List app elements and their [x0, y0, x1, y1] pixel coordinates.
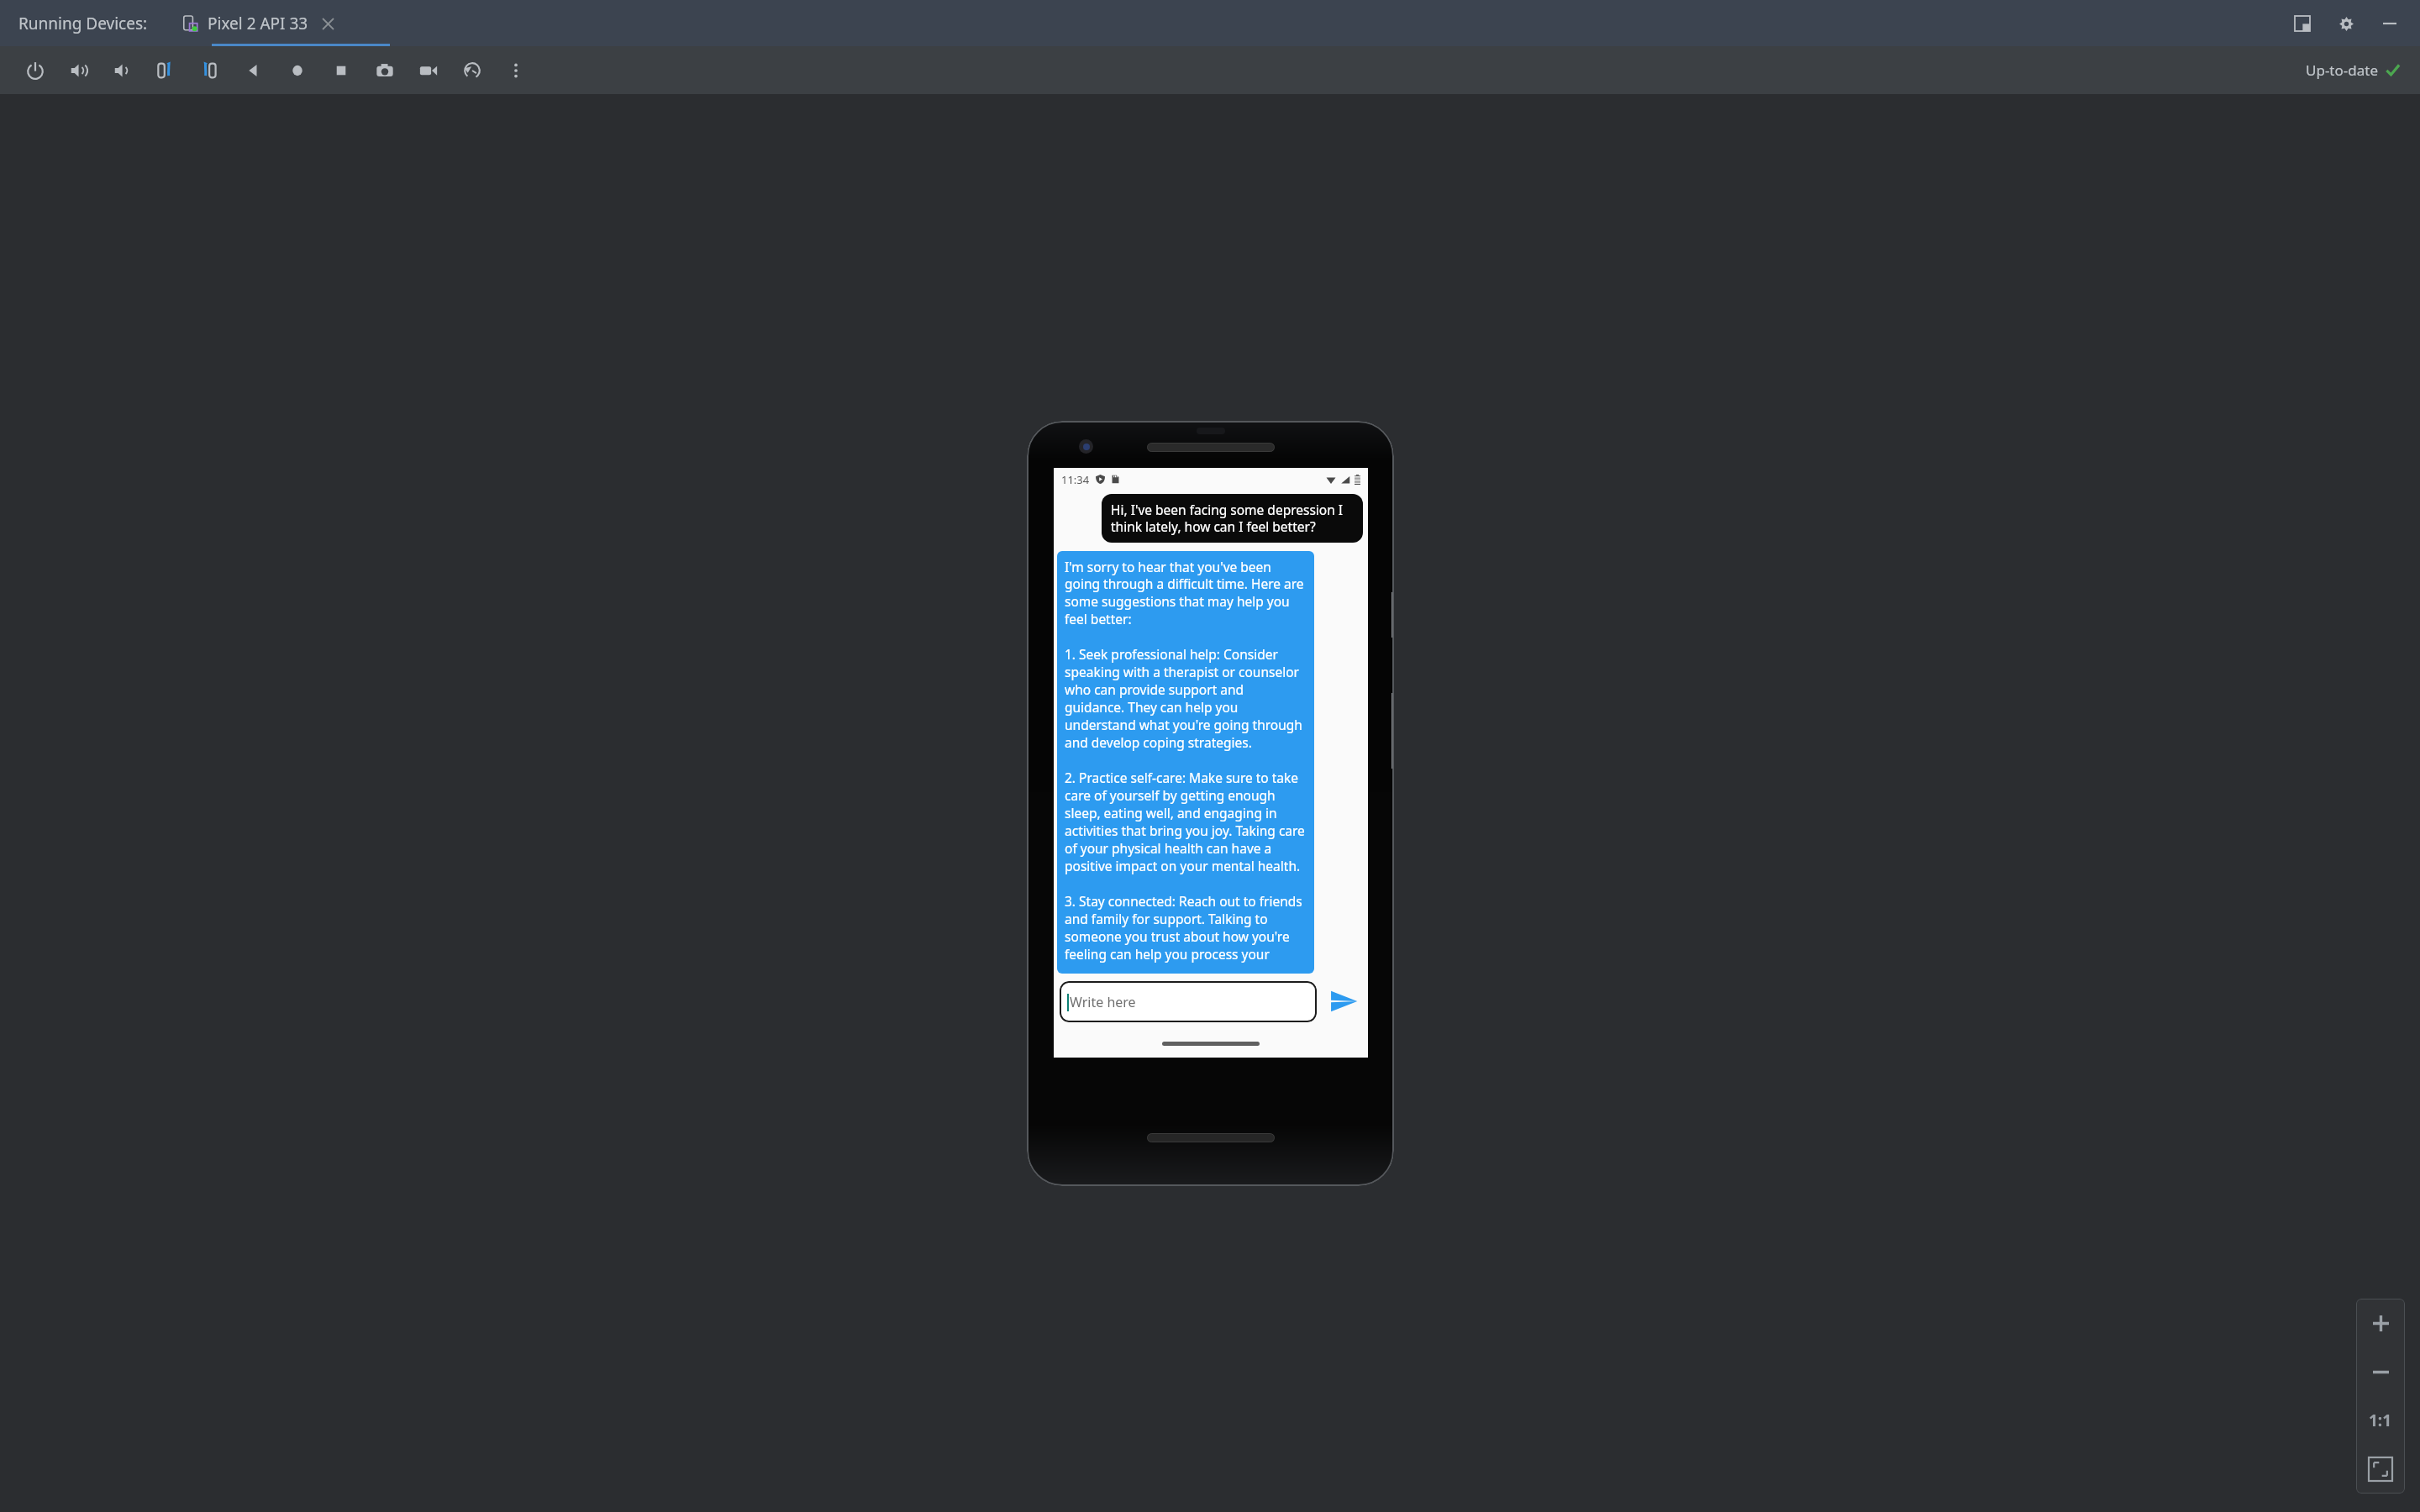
button[interactable]: Record screen	[407, 49, 450, 92]
staticText: 1:1	[2369, 1410, 2392, 1431]
button[interactable]: Settings	[2329, 7, 2363, 40]
staticText: 11:34	[1061, 472, 1090, 487]
button[interactable]: Zoom out	[2356, 1347, 2405, 1396]
staticText: Hi, I've been facing some depression I t…	[1111, 501, 1354, 536]
staticText: I'm sorry to hear that you've been going…	[1065, 558, 1307, 967]
staticText: Running Devices:	[18, 13, 148, 34]
staticText: Pixel 2 API 33	[208, 13, 308, 34]
button[interactable]: Overview	[319, 49, 363, 92]
staticText: Write here	[1070, 993, 1136, 1011]
button[interactable]: History	[450, 49, 494, 92]
button[interactable]: 1:1	[2356, 1396, 2405, 1445]
button[interactable]: Send	[1325, 983, 1362, 1020]
button[interactable]: I'm sorry to hear that you've been going…	[1057, 551, 1314, 974]
button[interactable]: Pixel 2 API 33	[173, 13, 347, 34]
button[interactable]: Rotate left	[145, 49, 188, 92]
button[interactable]: Zoom to fit	[2356, 1445, 2405, 1494]
button[interactable]: More	[494, 49, 538, 92]
staticText: Up-to-date	[2306, 60, 2378, 80]
button[interactable]: Close tab	[318, 14, 337, 33]
button[interactable]: Power	[13, 49, 57, 92]
button[interactable]: Layout	[2286, 7, 2319, 40]
button[interactable]: Zoom in	[2356, 1299, 2405, 1347]
button[interactable]: Back	[232, 49, 276, 92]
button[interactable]: Rotate right	[188, 49, 232, 92]
button[interactable]: Write here	[1060, 981, 1317, 1022]
button[interactable]: Screenshot	[363, 49, 407, 92]
button[interactable]: Volume up	[57, 49, 101, 92]
button[interactable]: Volume down	[101, 49, 145, 92]
button[interactable]: Hi, I've been facing some depression I t…	[1102, 494, 1363, 543]
button[interactable]: Home	[276, 49, 319, 92]
button[interactable]: Minimize	[2373, 7, 2407, 40]
